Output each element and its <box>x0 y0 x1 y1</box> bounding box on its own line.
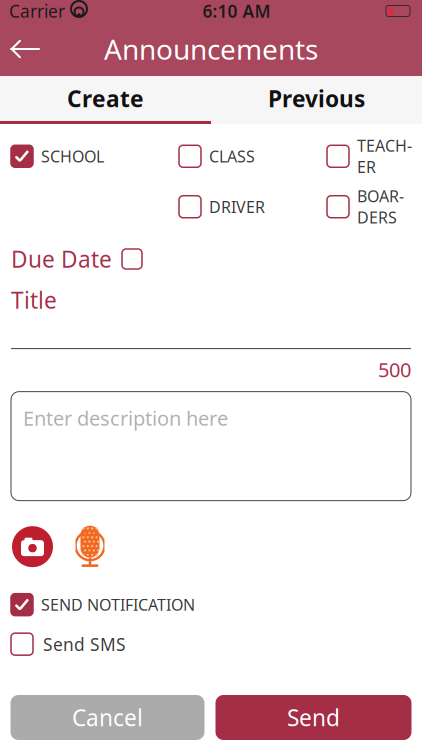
button[interactable]: Back <box>0 27 50 71</box>
button[interactable]: SCHOOL <box>11 145 179 167</box>
staticText: 6:10 AM <box>202 0 270 22</box>
staticText: SCHOOL <box>41 146 104 167</box>
button[interactable]: Send SMS <box>11 633 422 656</box>
staticText: Enter description here <box>23 405 228 431</box>
staticText: Carrier <box>9 0 65 22</box>
staticText: 500 <box>378 356 411 383</box>
button[interactable]: Attach photo <box>12 526 53 567</box>
staticText: Cancel <box>72 702 143 732</box>
button[interactable]: TEACHER <box>327 135 422 177</box>
staticText: Title <box>11 285 57 315</box>
staticText: DRIVER <box>209 196 265 217</box>
button[interactable]: Send <box>215 695 411 740</box>
staticText: SEND NOTIFICATION <box>41 594 195 615</box>
staticText: BOARDERS <box>357 185 404 228</box>
staticText: Announcements <box>104 30 318 68</box>
staticText: Send <box>287 702 340 732</box>
staticText: Create <box>67 83 144 113</box>
staticText: Due Date <box>11 244 112 274</box>
button[interactable]: Cancel <box>10 695 204 740</box>
button[interactable]: DRIVER <box>179 196 327 218</box>
button[interactable]: SEND NOTIFICATION <box>11 594 422 616</box>
staticText: Send SMS <box>43 633 126 656</box>
staticText: Previous <box>268 83 365 113</box>
button[interactable]: BOARDERS <box>327 185 422 228</box>
button[interactable]: Previous <box>211 76 422 121</box>
staticText: TEACHER <box>357 135 412 177</box>
staticText: CLASS <box>209 146 255 167</box>
button[interactable]: Record audio <box>74 525 106 569</box>
button[interactable]: Due Date <box>11 246 422 272</box>
button[interactable]: CLASS <box>179 145 327 167</box>
button[interactable]: Create <box>0 76 211 121</box>
